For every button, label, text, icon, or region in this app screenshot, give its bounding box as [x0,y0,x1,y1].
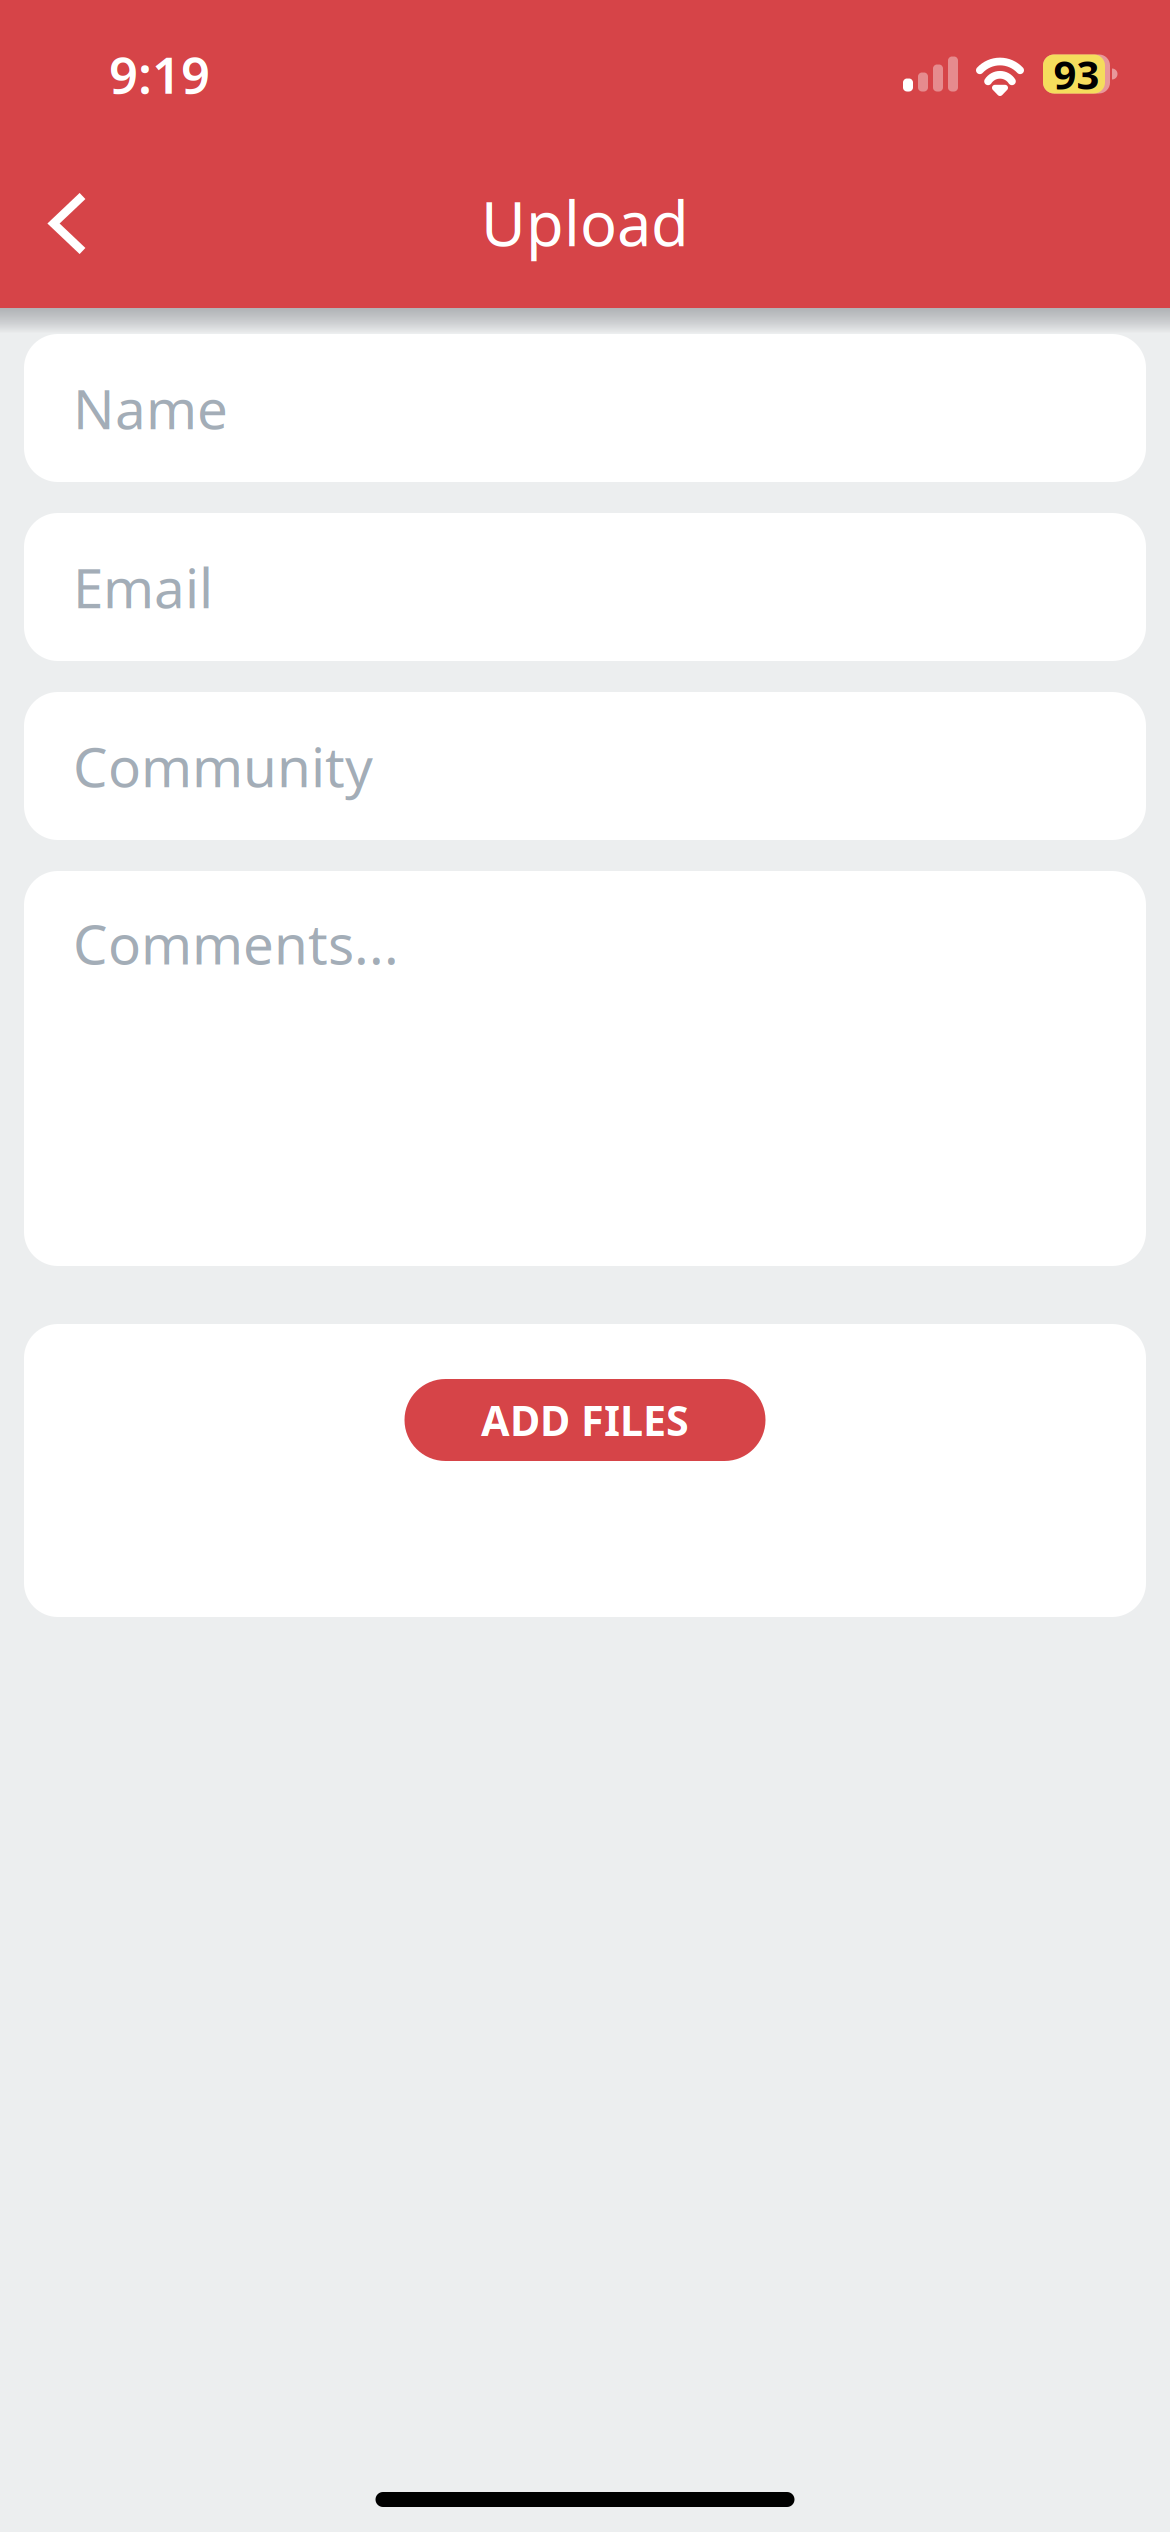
button[interactable]: Comments... [24,871,1146,1266]
button[interactable]: Back [6,166,128,286]
button[interactable]: ADD FILES [404,1379,765,1461]
staticText: 93 [1053,47,1099,100]
button[interactable]: Community [24,692,1146,840]
staticText: ADD FILES [481,1393,689,1447]
staticText: Email [73,551,213,623]
staticText: Comments... [73,907,399,980]
staticText: Upload [481,182,689,263]
staticText: 9:19 [109,40,210,108]
button[interactable]: Email [24,513,1146,661]
staticText: Community [73,730,373,802]
button[interactable]: Name [24,334,1146,482]
staticText: Name [73,372,228,444]
